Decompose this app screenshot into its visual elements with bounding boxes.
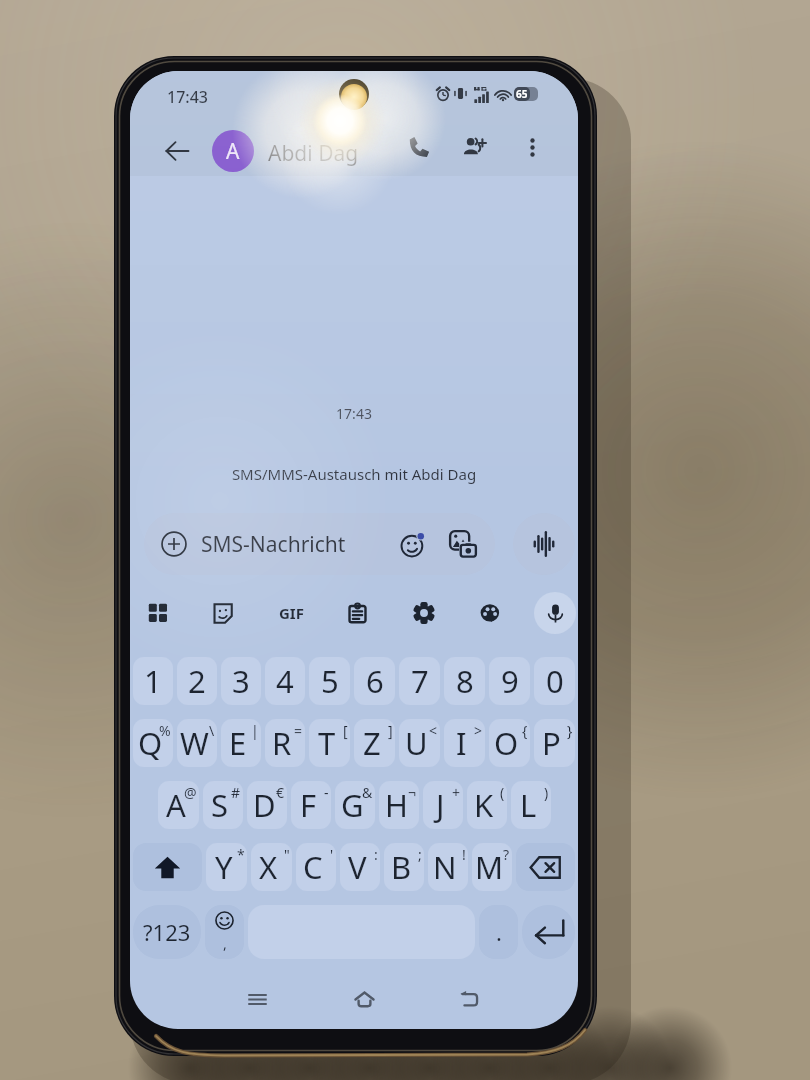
staticText: 7 xyxy=(411,660,429,702)
button[interactable]: GIF xyxy=(270,592,312,634)
button[interactable]: 8 xyxy=(444,657,485,705)
button[interactable]: V xyxy=(340,843,380,891)
button[interactable]: 0 xyxy=(534,657,575,705)
button[interactable]: G xyxy=(335,781,375,829)
staticText: + xyxy=(452,783,461,802)
button[interactable]: 5 xyxy=(309,657,350,705)
button[interactable]: J xyxy=(423,781,463,829)
staticText: Q xyxy=(138,722,163,764)
button[interactable]: H xyxy=(379,781,419,829)
staticText: 4 xyxy=(276,660,294,702)
staticText: < xyxy=(429,721,438,740)
button[interactable]: 2 xyxy=(177,657,217,705)
button[interactable]: Settings xyxy=(403,592,445,634)
button[interactable]: ?123 xyxy=(133,905,201,959)
staticText: , xyxy=(223,934,227,953)
staticText: V xyxy=(348,846,367,888)
staticText: X xyxy=(259,846,278,888)
button[interactable]: Clipboard xyxy=(336,592,378,634)
staticText: T xyxy=(318,722,336,764)
staticText: S xyxy=(211,784,229,826)
button[interactable]: Voice message xyxy=(513,513,575,575)
button[interactable]: P xyxy=(534,719,575,767)
staticText: A xyxy=(166,784,186,826)
staticText: ' xyxy=(330,845,334,864)
button[interactable]: Add person xyxy=(455,128,493,166)
button[interactable]: N xyxy=(428,843,468,891)
staticText: = xyxy=(294,721,303,740)
button[interactable]: S xyxy=(203,781,243,829)
staticText: * xyxy=(237,845,245,864)
button[interactable]: L xyxy=(511,781,551,829)
button[interactable]: X xyxy=(251,843,292,891)
button[interactable]: U xyxy=(399,719,440,767)
staticText: Abdi Dag xyxy=(268,139,359,168)
button[interactable]: . xyxy=(479,905,518,959)
staticText: \ xyxy=(209,721,215,740)
staticText: K xyxy=(474,784,494,826)
button[interactable]: 7 xyxy=(399,657,440,705)
staticText: 65 xyxy=(516,87,528,101)
staticText: & xyxy=(362,783,373,802)
staticText: D xyxy=(253,784,276,826)
button[interactable]: Z xyxy=(354,719,395,767)
staticText: F xyxy=(300,784,317,826)
staticText: } xyxy=(567,721,573,740)
staticText: { xyxy=(522,721,528,740)
button[interactable]: R xyxy=(265,719,305,767)
staticText: ] xyxy=(388,721,393,740)
button[interactable]: Y xyxy=(206,843,247,891)
button[interactable]: 3 xyxy=(221,657,261,705)
button[interactable]: Q xyxy=(133,719,173,767)
staticText: # xyxy=(231,783,241,802)
button[interactable]: Emoji xyxy=(205,905,244,959)
staticText: I xyxy=(456,722,467,764)
staticText: G xyxy=(341,784,364,826)
button[interactable]: I xyxy=(444,719,485,767)
button[interactable]: F xyxy=(291,781,331,829)
button[interactable]: A xyxy=(212,130,254,172)
staticText: 1 xyxy=(144,660,162,702)
staticText: R xyxy=(272,722,292,764)
button[interactable]: 9 xyxy=(489,657,530,705)
button[interactable]: B xyxy=(384,843,424,891)
button[interactable]: O xyxy=(489,719,530,767)
staticText: P xyxy=(542,722,561,764)
staticText: N xyxy=(433,846,457,888)
button[interactable]: M xyxy=(472,843,512,891)
button[interactable]: Recents xyxy=(239,981,275,1017)
button[interactable]: Stickers xyxy=(201,592,243,634)
button[interactable]: Theme xyxy=(469,592,511,634)
button[interactable]: 6 xyxy=(354,657,395,705)
button[interactable]: K xyxy=(467,781,507,829)
button[interactable]: A xyxy=(158,781,199,829)
staticText: Y xyxy=(215,846,233,888)
button[interactable]: Back xyxy=(157,131,197,171)
button[interactable]: SMS-Nachricht xyxy=(144,513,495,575)
button[interactable]: Microphone xyxy=(534,592,576,634)
button[interactable]: Shift xyxy=(133,843,202,891)
button[interactable]: 1 xyxy=(133,657,173,705)
staticText: [ xyxy=(343,721,348,740)
button[interactable]: C xyxy=(296,843,336,891)
staticText: ) xyxy=(544,783,549,802)
button[interactable]: More options xyxy=(515,130,549,164)
staticText: % xyxy=(159,721,171,740)
button[interactable]: Back xyxy=(451,981,487,1017)
button[interactable]: Backspace xyxy=(516,843,575,891)
staticText: ? xyxy=(503,845,510,864)
button[interactable]: 4 xyxy=(265,657,305,705)
staticText: Z xyxy=(363,722,381,764)
staticText: 17:43 xyxy=(167,86,208,108)
button[interactable]: T xyxy=(309,719,350,767)
button[interactable]: D xyxy=(247,781,287,829)
button[interactable]: Apps xyxy=(137,592,179,634)
button[interactable]: Call xyxy=(400,128,438,166)
staticText: ?123 xyxy=(143,917,191,947)
button[interactable]: Home xyxy=(346,981,382,1017)
button[interactable]: E xyxy=(221,719,261,767)
button[interactable]: W xyxy=(177,719,217,767)
staticText: SMS/MMS-Austausch mit Abdi Dag xyxy=(130,464,578,484)
button[interactable]: Enter xyxy=(522,905,575,959)
